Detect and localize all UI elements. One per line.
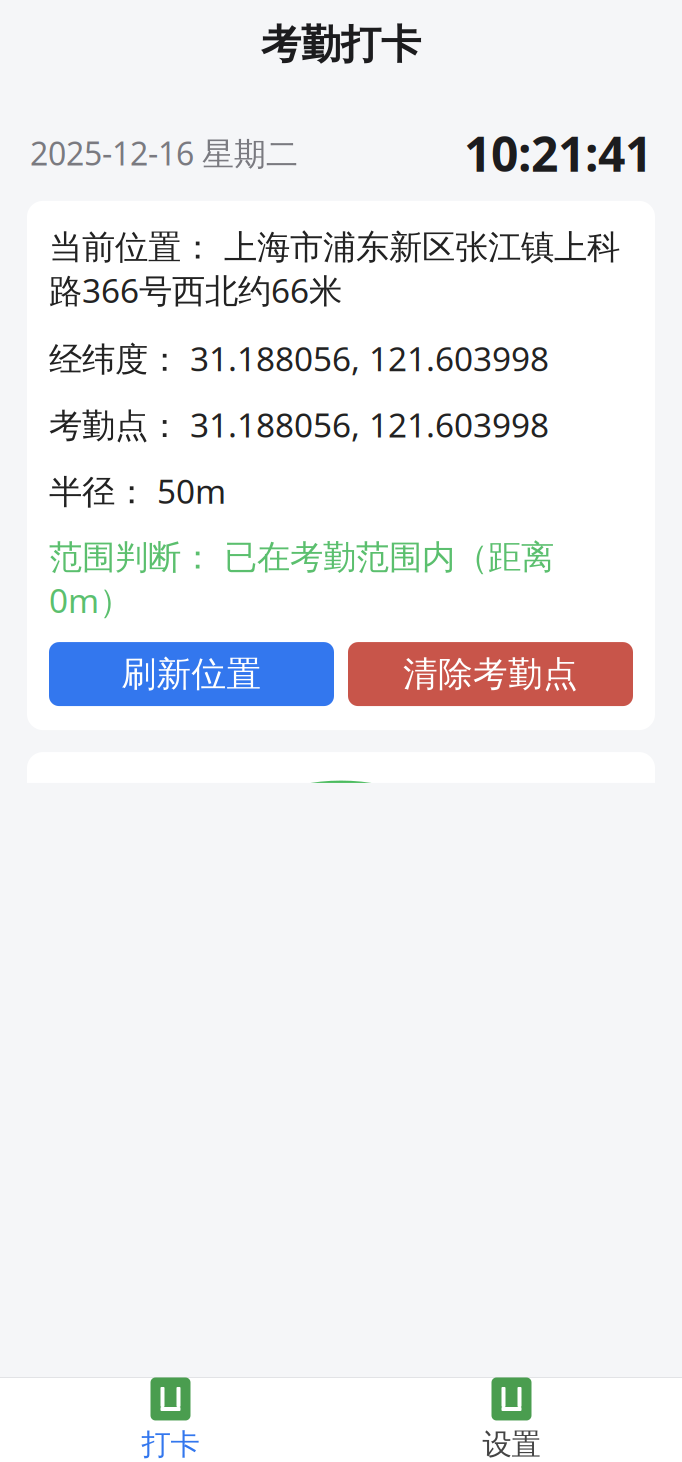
button[interactable]: 刷新位置 bbox=[49, 642, 334, 706]
staticText: 10:21:41 bbox=[464, 121, 652, 185]
staticText: 2025-12-16 星期二 bbox=[30, 132, 298, 174]
button[interactable]: 打卡 bbox=[0, 1377, 341, 1462]
staticText: 清除考勤点 bbox=[403, 653, 578, 695]
staticText: 打卡 bbox=[141, 1426, 199, 1462]
button[interactable]: 设置 bbox=[341, 1377, 682, 1462]
staticText: 经纬度： 31.188056, 121.603998 bbox=[49, 336, 549, 380]
staticText: 刷新位置 bbox=[121, 653, 261, 695]
button[interactable]: 清除考勤点 bbox=[348, 642, 633, 706]
staticText: 范围判断： 已在考勤范围内（距离0m） bbox=[49, 537, 554, 622]
staticText: 考勤打卡 bbox=[261, 20, 421, 69]
staticText: 考勤点： 31.188056, 121.603998 bbox=[49, 402, 549, 447]
staticText: 今日打卡记录 bbox=[49, 1353, 271, 1399]
staticText: 半径： 50m bbox=[49, 469, 226, 513]
staticText: 当前位置： 上海市浦东新区张江镇上科路366号西北约66米 bbox=[49, 227, 620, 312]
staticText: 设置 bbox=[482, 1426, 540, 1462]
staticText: 暂无记录 bbox=[49, 1419, 181, 1460]
